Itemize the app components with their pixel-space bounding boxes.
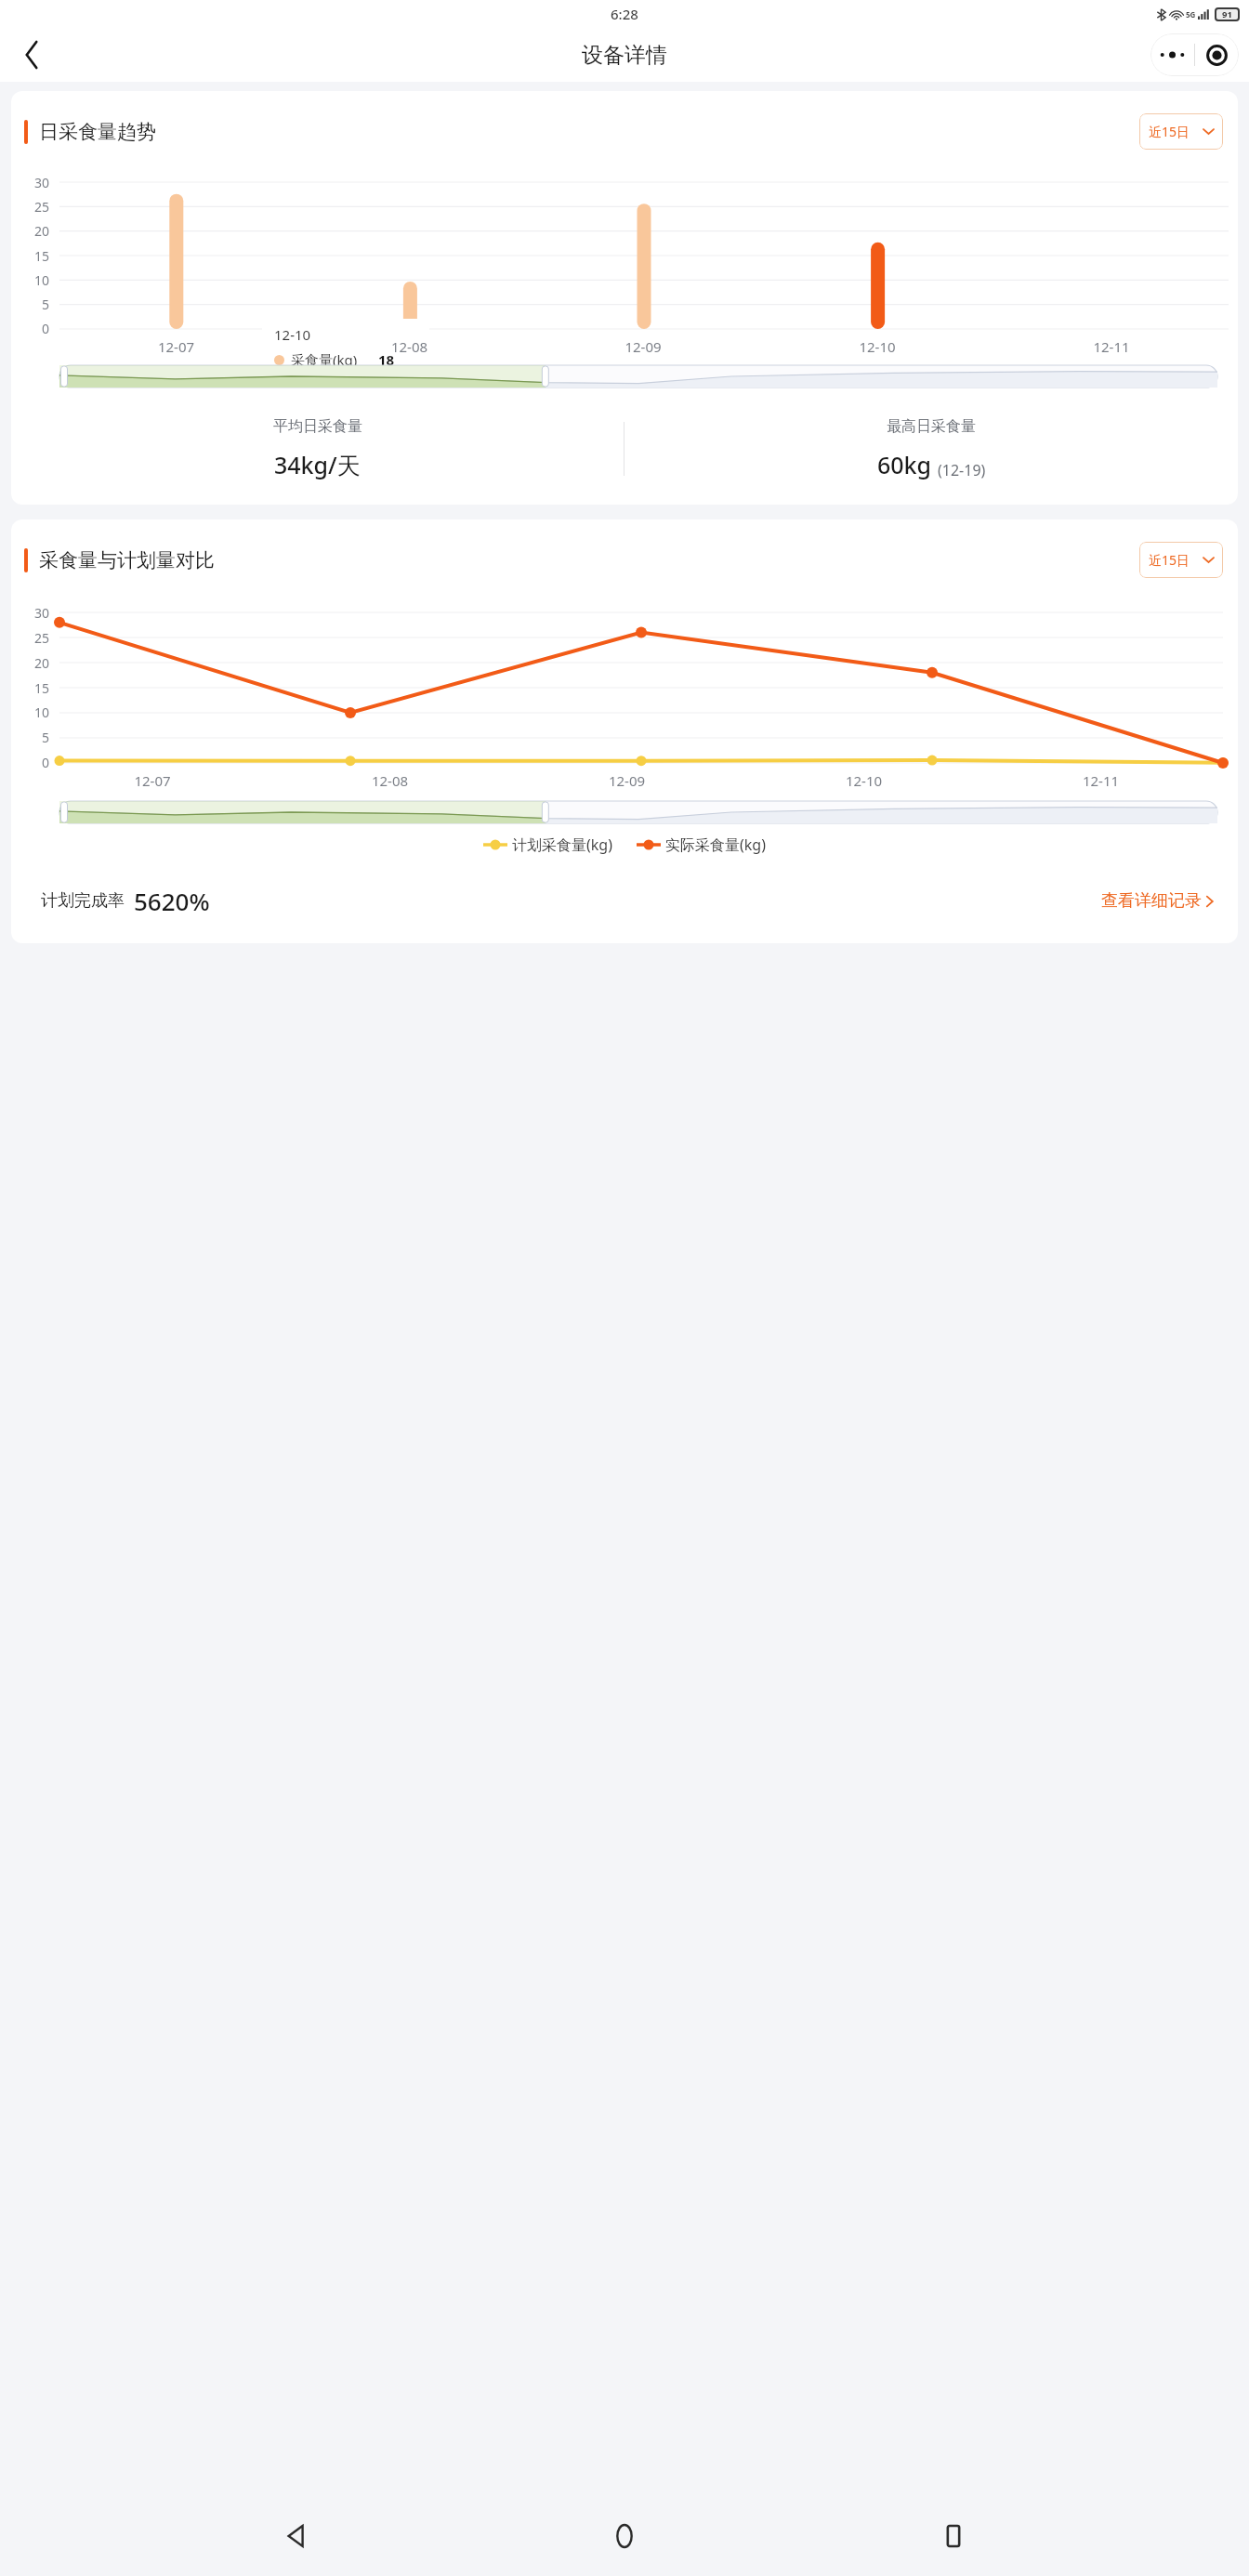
staticText: 平均日采食量: [273, 417, 362, 436]
staticText: 10: [34, 703, 50, 721]
staticText: 25: [34, 198, 50, 216]
staticText: 12-08: [293, 337, 526, 356]
staticText: 20: [34, 222, 50, 240]
button[interactable]: Recents: [921, 2504, 986, 2569]
staticText: 0: [42, 320, 50, 337]
staticText: 10: [34, 271, 50, 289]
staticText: 20: [34, 654, 50, 672]
staticText: 15: [34, 679, 50, 697]
staticText: 5620%: [134, 885, 210, 917]
staticText: 18: [378, 350, 395, 369]
staticText: 30: [34, 174, 50, 191]
staticText: 60kg: [877, 449, 932, 480]
staticText: 计划完成率: [41, 890, 125, 912]
staticText: 5G: [1186, 9, 1196, 20]
staticText: 设备详情: [582, 42, 667, 69]
staticText: 12-09: [526, 337, 760, 356]
staticText: 12-11: [994, 337, 1229, 356]
staticText: 12-09: [508, 771, 745, 790]
button[interactable]: Back: [264, 2504, 329, 2569]
staticText: 91: [1222, 8, 1232, 20]
staticText: 5: [42, 729, 50, 746]
button[interactable]: More options: [1150, 33, 1194, 76]
staticText: 25: [34, 629, 50, 647]
staticText: 采食量(kg): [291, 350, 358, 369]
staticText: 日采食量趋势: [39, 120, 156, 144]
staticText: 12-10: [274, 325, 311, 344]
button[interactable]: Back: [7, 31, 56, 79]
staticText: 查看详细记录: [1101, 890, 1202, 912]
button[interactable]: Home: [592, 2504, 657, 2569]
button[interactable]: 近15日: [1139, 542, 1223, 578]
staticText: 采食量与计划量对比: [39, 548, 215, 572]
button[interactable]: 查看详细记录: [1101, 890, 1214, 912]
staticText: 12-10: [760, 337, 994, 356]
staticText: 12-08: [271, 771, 508, 790]
staticText: (12-19): [938, 460, 986, 480]
staticText: 12-10: [745, 771, 982, 790]
staticText: 近15日: [1149, 123, 1190, 140]
staticText: 实际采食量(kg): [665, 835, 766, 855]
staticText: 近15日: [1149, 551, 1190, 569]
staticText: 0: [42, 754, 50, 771]
staticText: 12-07: [59, 337, 293, 356]
staticText: 最高日采食量: [887, 417, 976, 436]
staticText: 5: [42, 296, 50, 313]
staticText: 12-07: [33, 771, 271, 790]
staticText: 计划采食量(kg): [512, 835, 612, 855]
staticText: 15: [34, 247, 50, 265]
staticText: 12-11: [982, 771, 1219, 790]
staticText: 6:28: [611, 5, 638, 23]
staticText: 30: [34, 604, 50, 622]
button[interactable]: Record: [1195, 33, 1239, 76]
staticText: 34kg/天: [274, 449, 361, 480]
button[interactable]: 近15日: [1139, 113, 1223, 150]
